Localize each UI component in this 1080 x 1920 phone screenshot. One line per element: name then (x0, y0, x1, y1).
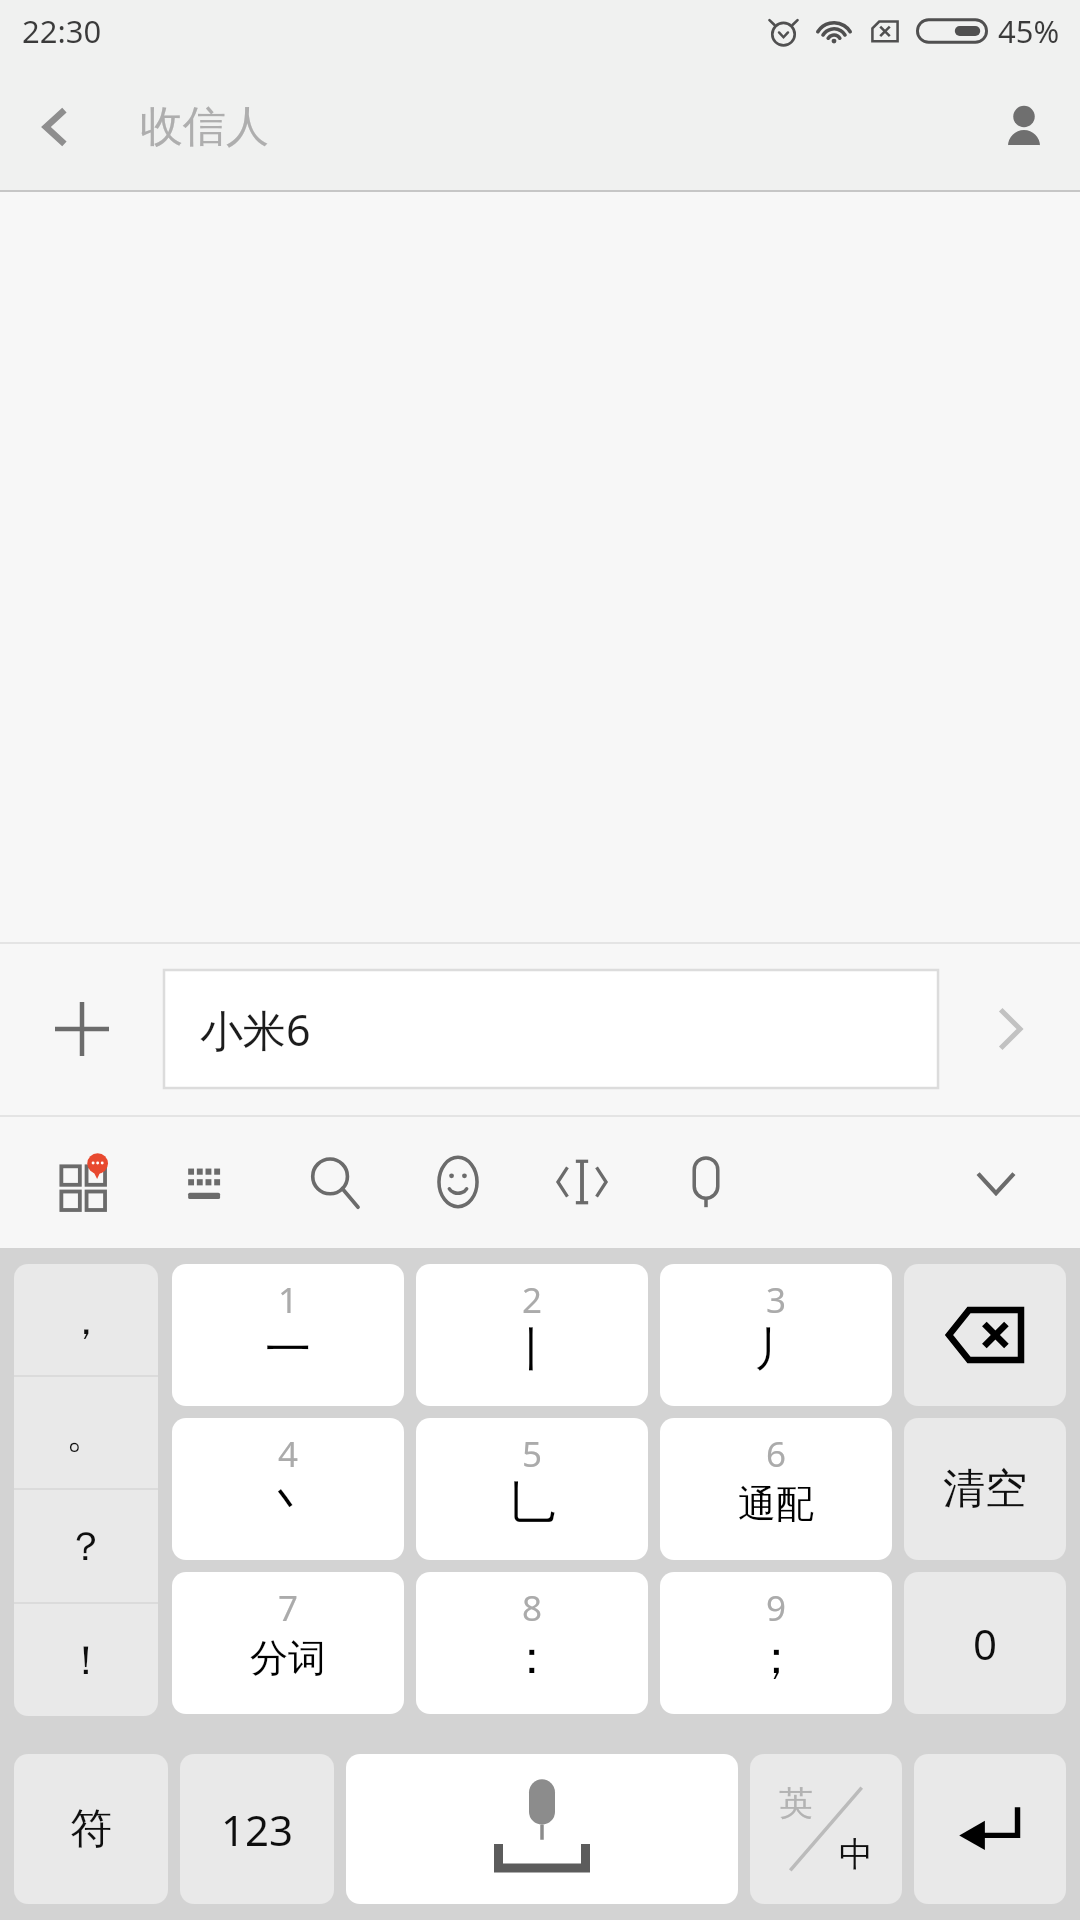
button[interactable]: 符 (14, 1754, 168, 1904)
staticText: ： (509, 1629, 555, 1687)
button[interactable]: 2 (416, 1264, 648, 1406)
button[interactable]: Tools (44, 1140, 128, 1224)
button[interactable]: Keyboard layout (168, 1140, 252, 1224)
staticText: 丨 (509, 1321, 555, 1379)
button[interactable]: ！ (14, 1604, 158, 1716)
staticText: 22:30 (22, 10, 102, 52)
staticText: 收信人 (140, 100, 269, 154)
staticText: 一 (265, 1321, 311, 1379)
staticText: 清空 (943, 1463, 1027, 1516)
staticText: 8 (522, 1584, 543, 1632)
staticText: 丿 (753, 1321, 799, 1379)
button[interactable]: Voice input (664, 1140, 748, 1224)
staticText: 4 (278, 1430, 299, 1478)
button[interactable]: 6 (660, 1418, 892, 1560)
staticText: 小米6 (200, 1000, 311, 1059)
staticText: 5 (522, 1430, 543, 1478)
button[interactable]: 清空 (904, 1418, 1066, 1560)
button[interactable]: Emoji (416, 1140, 500, 1224)
staticText: 。 (66, 1408, 106, 1458)
button[interactable]: 。 (14, 1377, 158, 1488)
button[interactable]: Choose contact (968, 71, 1080, 183)
button[interactable]: 123 (180, 1754, 334, 1904)
button[interactable]: 5 (416, 1418, 648, 1560)
button[interactable]: 3 (660, 1264, 892, 1406)
button[interactable]: Move cursor (540, 1140, 624, 1224)
button[interactable]: 0 (904, 1572, 1066, 1714)
button[interactable]: ， (14, 1264, 158, 1375)
staticText: 45% (998, 10, 1060, 52)
staticText: ； (753, 1629, 799, 1687)
button[interactable]: Backspace (904, 1264, 1066, 1406)
staticText: 9 (766, 1584, 787, 1632)
button[interactable]: Space, hold for voice input (346, 1754, 738, 1904)
staticText: 2 (522, 1276, 543, 1324)
button[interactable]: 7 (172, 1572, 404, 1714)
staticText: 英 (779, 1782, 813, 1825)
staticText: 乚 (509, 1475, 555, 1533)
button[interactable]: 4 (172, 1418, 404, 1560)
button[interactable]: ？ (14, 1490, 158, 1602)
staticText: 通配 (738, 1480, 814, 1528)
staticText: ？ (66, 1521, 106, 1571)
staticText: 1 (278, 1276, 299, 1324)
button[interactable]: Enter (914, 1754, 1066, 1904)
button[interactable]: Search (292, 1140, 376, 1224)
staticText: 6 (766, 1430, 787, 1478)
button[interactable]: 8 (416, 1572, 648, 1714)
button[interactable]: 9 (660, 1572, 892, 1714)
button[interactable]: Switch language (750, 1754, 902, 1904)
button[interactable]: Back (0, 71, 112, 183)
button[interactable]: 小米6 (164, 970, 938, 1088)
staticText: ！ (66, 1635, 106, 1685)
staticText: 中 (839, 1833, 873, 1876)
button[interactable]: Hide keyboard (954, 1140, 1038, 1224)
button[interactable]: 1 (172, 1264, 404, 1406)
staticText: 分词 (250, 1634, 326, 1682)
staticText: 0 (973, 1615, 998, 1672)
staticText: 丶 (265, 1475, 311, 1533)
button[interactable]: Next (938, 942, 1080, 1115)
staticText: 7 (278, 1584, 299, 1632)
staticText: 3 (766, 1276, 787, 1324)
staticText: 符 (70, 1803, 112, 1856)
staticText: ， (66, 1295, 106, 1345)
staticText: 123 (221, 1801, 294, 1858)
button[interactable]: Add (0, 942, 164, 1115)
